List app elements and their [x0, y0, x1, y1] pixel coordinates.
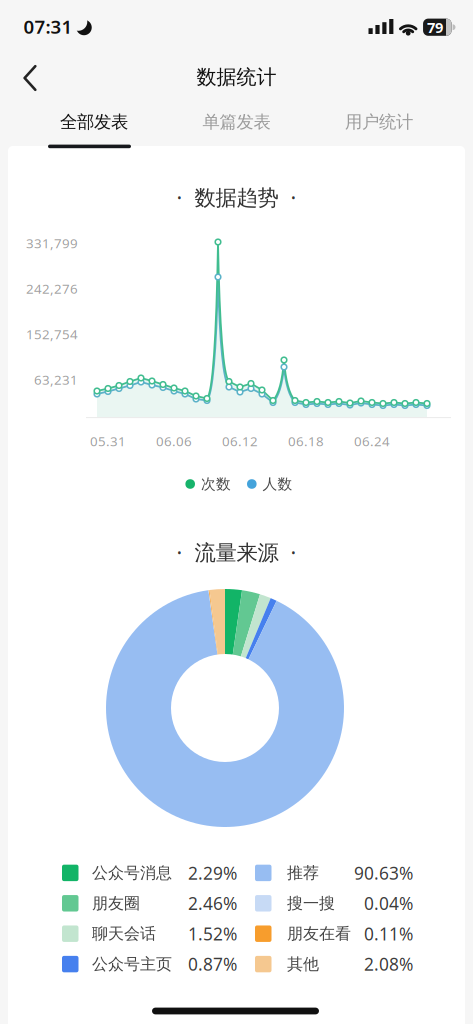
staticText: 公众号主页	[92, 954, 172, 974]
staticText: 06.18	[288, 432, 324, 450]
staticText: 06.06	[156, 432, 192, 450]
staticText: 0.11%	[364, 922, 413, 945]
staticText: 朋友圈	[92, 893, 140, 913]
staticText: 2.46%	[188, 892, 237, 915]
staticText: 07:31	[23, 14, 72, 39]
staticText: 朋友在看	[287, 924, 351, 944]
staticText: 06.24	[354, 432, 390, 450]
staticText: 全部发表	[60, 111, 128, 133]
staticText: 0.04%	[364, 892, 413, 915]
staticText: 152,754	[26, 325, 78, 343]
staticText: 其他	[287, 954, 319, 974]
staticText: 人数	[263, 475, 293, 493]
staticText: 79	[427, 17, 443, 37]
staticText: 2.08%	[364, 953, 413, 976]
staticText: 数据统计	[196, 65, 276, 89]
staticText: 公众号消息	[92, 863, 172, 883]
staticText: 用户统计	[345, 111, 413, 133]
button[interactable]: Back	[0, 0, 473, 1024]
staticText: 90.63%	[354, 861, 413, 884]
staticText: 2.29%	[188, 861, 237, 884]
staticText: · 数据趋势 ·	[176, 183, 296, 211]
staticText: 聊天会话	[92, 924, 156, 944]
button[interactable]: 用户统计	[0, 0, 473, 1024]
staticText: 1.52%	[188, 922, 237, 945]
staticText: 搜一搜	[287, 893, 335, 913]
staticText: 331,799	[26, 234, 78, 252]
button[interactable]: 全部发表	[0, 0, 473, 1024]
staticText: 05.31	[90, 432, 126, 450]
staticText: 63,231	[34, 371, 78, 388]
staticText: 推荐	[287, 863, 319, 883]
staticText: 06.12	[222, 432, 258, 450]
staticText: 次数	[201, 475, 231, 493]
staticText: 单篇发表	[202, 111, 270, 133]
staticText: 0.87%	[188, 953, 237, 976]
button[interactable]: 单篇发表	[0, 0, 473, 1024]
staticText: · 流量来源 ·	[176, 538, 296, 566]
staticText: 242,276	[26, 280, 78, 297]
